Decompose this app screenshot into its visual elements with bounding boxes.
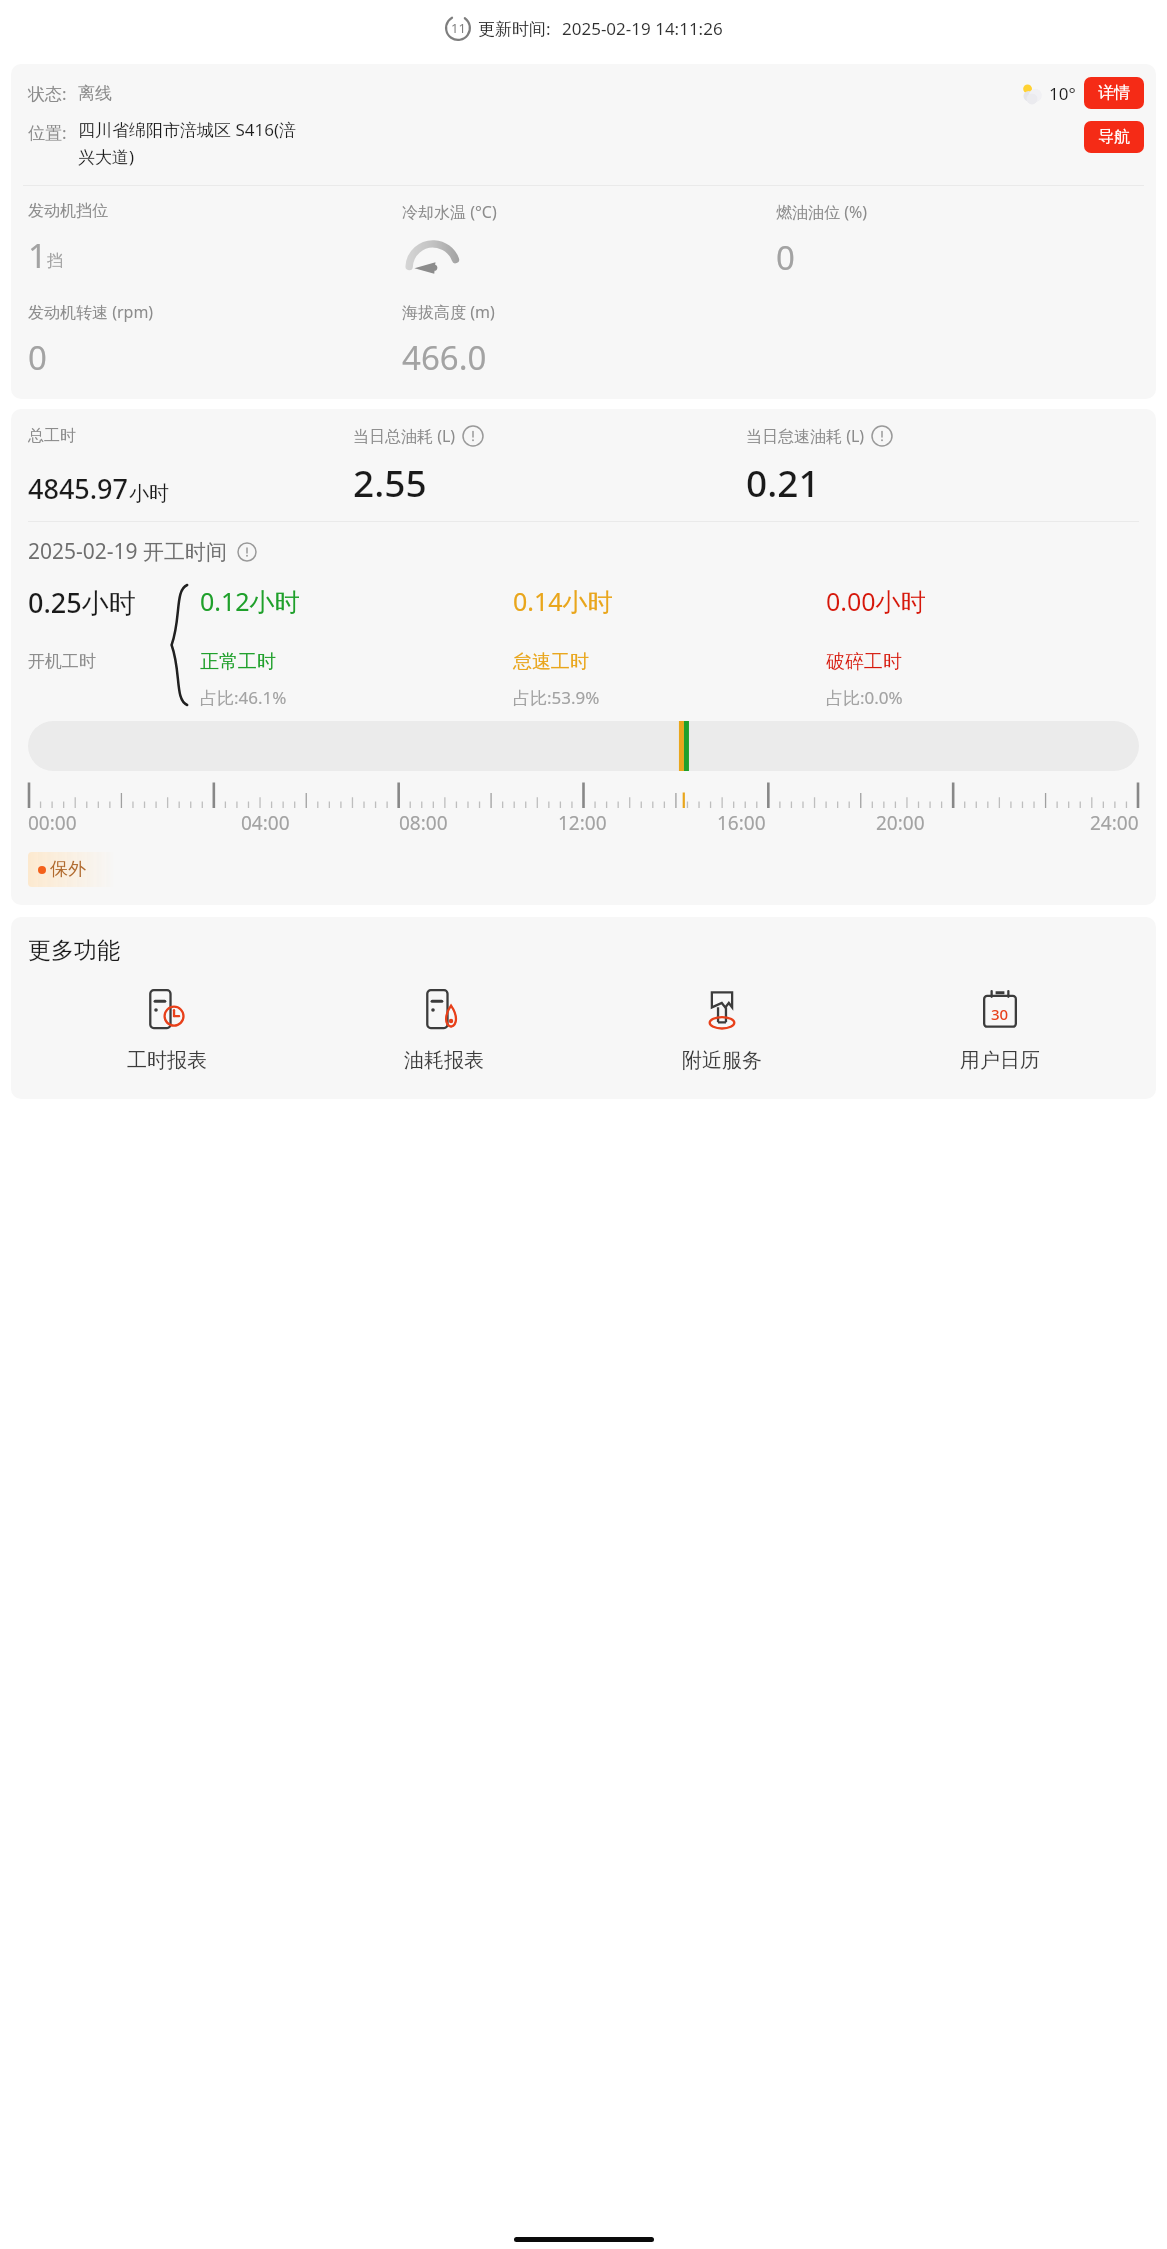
- staticText: 附近服务: [682, 1048, 762, 1073]
- staticText: 00:00: [28, 810, 77, 836]
- staticText: 466.0: [402, 335, 487, 377]
- staticText: 2025-02-19 开工时间: [28, 537, 228, 566]
- staticText: 破碎工时: [826, 650, 902, 674]
- staticText: 离线: [78, 83, 112, 104]
- staticText: 燃油油位 (%): [776, 201, 868, 223]
- staticText: 11: [451, 19, 466, 37]
- staticText: 当日怠速油耗 (L): [746, 425, 865, 447]
- button[interactable]: 导航: [1084, 121, 1144, 153]
- staticText: 挡: [47, 251, 63, 271]
- staticText: 0.00小时: [826, 584, 926, 618]
- staticText: 油耗报表: [404, 1048, 484, 1073]
- staticText: 更多功能: [28, 936, 120, 965]
- staticText: 导航: [1098, 127, 1130, 147]
- other: 说明: [462, 425, 484, 447]
- staticText: 冷却水温 (°C): [402, 201, 497, 223]
- staticText: 小时: [129, 481, 169, 506]
- staticText: 20:00: [876, 810, 925, 836]
- staticText: 10°: [1049, 82, 1076, 105]
- staticText: 占比:53.9%: [513, 686, 600, 709]
- staticText: 04:00: [241, 810, 290, 836]
- staticText: 总工时: [28, 426, 76, 446]
- other: 油耗报表: [422, 988, 466, 1032]
- other: 工时报表: [145, 988, 189, 1032]
- button[interactable]: 详情: [1084, 77, 1144, 109]
- staticText: 12:00: [558, 810, 607, 836]
- other: 刷新倒计时: [445, 15, 471, 41]
- staticText: 16:00: [717, 810, 766, 836]
- button[interactable]: 油耗报表: [305, 985, 583, 1073]
- staticText: 0.21: [746, 457, 820, 507]
- staticText: 当日总油耗 (L): [353, 425, 456, 447]
- staticText: 四川省绵阳市涪城区 S416(涪 兴大道): [78, 118, 297, 168]
- staticText: 位置:: [28, 121, 67, 144]
- staticText: 发动机转速 (rpm): [28, 301, 154, 323]
- other: 说明: [237, 542, 257, 562]
- staticText: 0.14小时: [513, 584, 613, 618]
- staticText: 08:00: [399, 810, 448, 836]
- staticText: 保外: [50, 858, 86, 881]
- staticText: 工时报表: [127, 1048, 207, 1073]
- staticText: 详情: [1098, 83, 1130, 103]
- staticText: 2025-02-19 14:11:26: [562, 17, 723, 40]
- staticText: 4845.97: [28, 470, 129, 507]
- button[interactable]: 保外: [28, 852, 116, 887]
- staticText: 0: [776, 235, 795, 277]
- staticText: 占比:46.1%: [200, 686, 287, 709]
- staticText: 24:00: [1090, 810, 1139, 836]
- staticText: 30: [991, 1004, 1009, 1024]
- staticText: 发动机挡位: [28, 201, 108, 221]
- staticText: 正常工时: [200, 650, 276, 674]
- staticText: 0.25小时: [28, 584, 136, 621]
- staticText: 怠速工时: [513, 650, 589, 674]
- staticText: 更新时间:: [478, 17, 551, 40]
- staticText: 占比:0.0%: [826, 686, 903, 709]
- staticText: 开机工时: [28, 651, 96, 672]
- button[interactable]: 工时报表: [28, 985, 305, 1073]
- staticText: 用户日历: [960, 1048, 1040, 1073]
- staticText: 2.55: [353, 457, 427, 507]
- staticText: 状态:: [28, 82, 67, 105]
- staticText: 1: [28, 233, 47, 275]
- staticText: 海拔高度 (m): [402, 301, 495, 323]
- button[interactable]: 用户日历: [861, 985, 1139, 1073]
- other: 用户日历: [978, 988, 1022, 1032]
- button[interactable]: 附近服务: [583, 985, 861, 1073]
- staticText: 0: [28, 335, 47, 377]
- staticText: 0.12小时: [200, 584, 300, 618]
- other: 说明: [871, 425, 893, 447]
- other: 附近服务: [700, 988, 744, 1032]
